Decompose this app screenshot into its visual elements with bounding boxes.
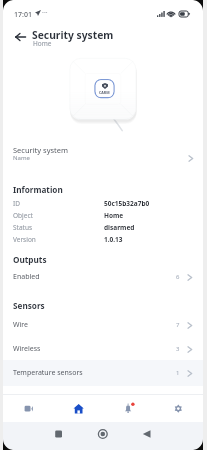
- button[interactable]: Back button: [135, 422, 159, 448]
- staticText: Enabled: [13, 272, 40, 282]
- button[interactable]: Cameras: [3, 394, 53, 423]
- staticText: 7: [176, 321, 180, 329]
- staticText: Security system: [13, 145, 69, 155]
- staticText: Name: [13, 154, 30, 162]
- staticText: 50c15b32a7b0: [104, 199, 150, 208]
- staticText: Object: [13, 211, 33, 220]
- button[interactable]: Home: [53, 394, 103, 423]
- staticText: ID: [13, 199, 20, 208]
- staticText: CARM: [99, 90, 110, 95]
- button[interactable]: Wire: [3, 313, 203, 337]
- staticText: Status: [13, 223, 33, 232]
- button[interactable]: Cameras: [21, 394, 71, 423]
- button[interactable]: Wireless: [3, 337, 203, 361]
- button[interactable]: Recents: [47, 422, 71, 448]
- button[interactable]: Notifications: [103, 394, 153, 423]
- button[interactable]: Settings: [153, 394, 203, 423]
- staticText: Version: [13, 235, 36, 244]
- staticText: Home: [104, 211, 124, 220]
- button[interactable]: Back: [11, 27, 30, 46]
- staticText: Temperature sensors: [13, 368, 83, 378]
- staticText: Sensors: [13, 300, 45, 311]
- staticText: Outputs: [13, 254, 47, 265]
- staticText: 6: [176, 273, 180, 281]
- staticText: 3: [176, 345, 180, 353]
- button[interactable]: Temperature sensors: [3, 360, 203, 386]
- staticText: Security system: [32, 28, 114, 42]
- button[interactable]: Security system: [3, 143, 203, 169]
- button[interactable]: Enabled: [3, 265, 203, 289]
- staticText: 1.0.13: [104, 235, 123, 244]
- staticText: 1: [176, 369, 180, 377]
- staticText: Information: [13, 184, 63, 195]
- staticText: 17:01: [14, 10, 32, 20]
- staticText: disarmed: [104, 223, 135, 232]
- staticText: Wire: [13, 320, 29, 330]
- button[interactable]: Home button: [91, 422, 115, 448]
- staticText: ···: [42, 8, 48, 18]
- staticText: Wireless: [13, 344, 41, 354]
- staticText: Home: [33, 39, 52, 48]
